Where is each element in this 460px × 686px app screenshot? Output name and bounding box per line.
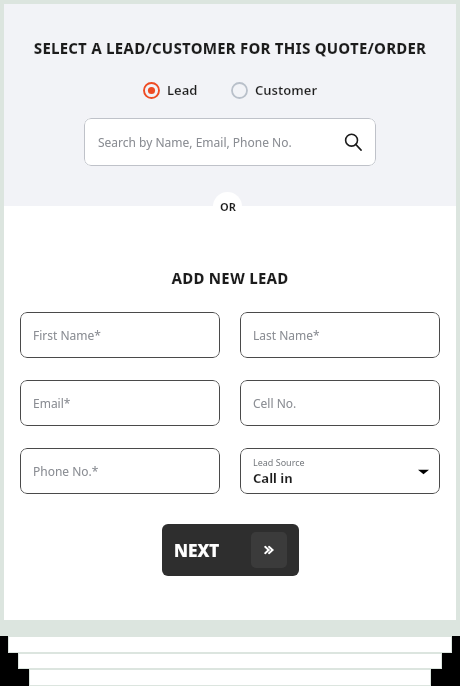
button[interactable]: Lead <box>141 79 200 101</box>
staticText: NEXT <box>174 539 220 562</box>
staticText: Search by Name, Email, Phone No. <box>98 134 292 150</box>
staticText: OR <box>220 199 236 214</box>
other: Search <box>344 133 362 151</box>
staticText: Call in <box>253 469 293 487</box>
staticText: Phone No.* <box>33 463 99 479</box>
staticText: ADD NEW LEAD <box>4 268 456 288</box>
other: Open Lead Source options <box>418 466 429 477</box>
staticText: Last Name* <box>253 327 320 343</box>
button[interactable]: Search by Name, Email, Phone No. <box>84 118 376 166</box>
staticText: Email* <box>33 395 71 411</box>
staticText: Lead Source <box>253 456 305 468</box>
button[interactable]: Phone No.* <box>20 448 220 494</box>
button[interactable]: Email* <box>20 380 220 426</box>
button[interactable]: Lead Source <box>240 448 440 494</box>
button[interactable]: First Name* <box>20 312 220 358</box>
staticText: SELECT A LEAD/CUSTOMER FOR THIS QUOTE/OR… <box>4 38 456 58</box>
staticText: Cell No. <box>253 395 297 411</box>
button[interactable]: Last Name* <box>240 312 440 358</box>
button[interactable]: NEXT <box>162 524 299 576</box>
staticText: Customer <box>255 81 318 99</box>
button[interactable]: Cell No. <box>240 380 440 426</box>
staticText: First Name* <box>33 327 101 343</box>
staticText: Lead <box>167 81 198 99</box>
button[interactable]: Customer <box>229 79 320 101</box>
